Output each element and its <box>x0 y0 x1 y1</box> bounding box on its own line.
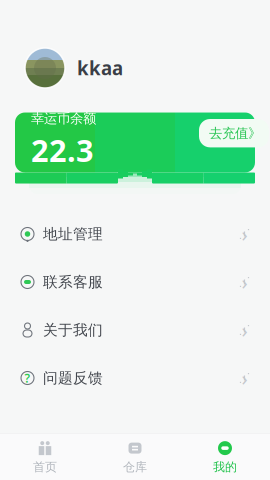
button[interactable]: 仓库 <box>90 434 180 480</box>
button[interactable]: 地址管理 <box>0 210 270 258</box>
staticText: 联系客服 <box>43 273 103 291</box>
staticText: 问题反馈 <box>43 369 103 387</box>
staticText: 去充值》 <box>209 125 261 141</box>
button[interactable]: 我的 <box>180 434 270 480</box>
staticText: › <box>241 317 247 343</box>
staticText: › <box>241 221 247 247</box>
button[interactable]: 关于我们 <box>0 306 270 354</box>
staticText: › <box>241 269 247 295</box>
button[interactable]: 去充值》 <box>199 119 269 147</box>
staticText: 首页 <box>33 460 57 474</box>
staticText: ? <box>24 370 30 386</box>
staticText: 我的 <box>213 460 237 474</box>
button[interactable]: 首页 <box>0 434 90 480</box>
staticText: kkaa <box>77 56 123 80</box>
staticText: 仓库 <box>123 460 147 474</box>
staticText: 地址管理 <box>43 225 103 243</box>
staticText: › <box>241 365 247 391</box>
button[interactable]: Profile photo <box>25 48 65 88</box>
button[interactable]: ? <box>0 354 270 402</box>
staticText: 22.3 <box>31 130 94 170</box>
staticText: 幸运币余额 <box>31 110 96 127</box>
button[interactable]: 联系客服 <box>0 258 270 306</box>
staticText: 关于我们 <box>43 321 103 339</box>
